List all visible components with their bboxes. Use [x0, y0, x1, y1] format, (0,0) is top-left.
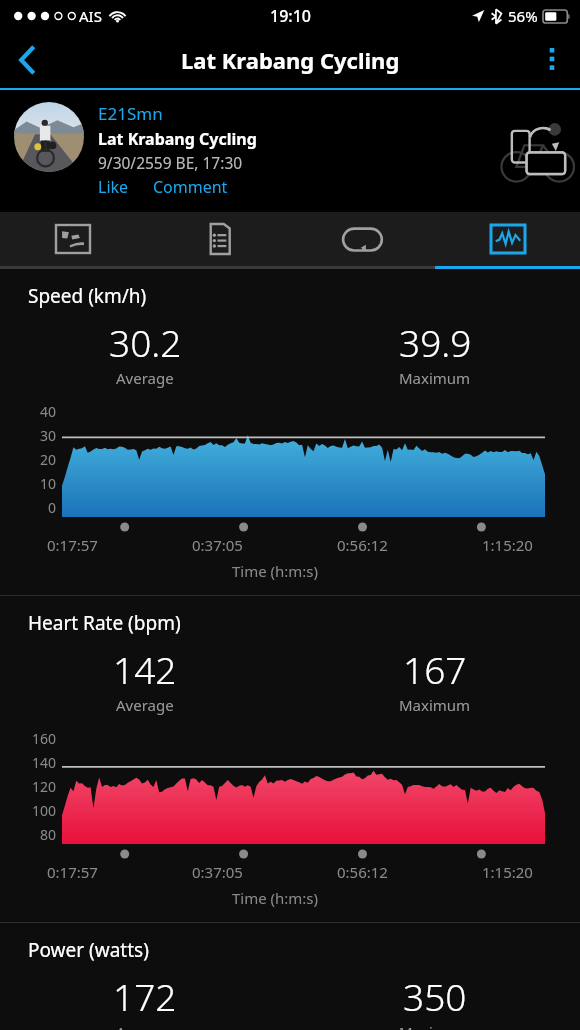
button[interactable]: Charts [435, 212, 580, 266]
button[interactable]: E21Smn [14, 102, 580, 212]
staticText: 142 [113, 644, 177, 694]
other: Rotate device [500, 115, 574, 187]
staticText: Power (watts) [28, 937, 149, 963]
button[interactable]: More options [524, 32, 580, 88]
staticText: 1:15:20 [482, 535, 533, 555]
staticText: Average [116, 695, 174, 715]
staticText: Maximum [399, 695, 471, 715]
staticText: 40 [39, 402, 56, 421]
staticText: 39.9 [399, 317, 472, 367]
staticText: 1:15:20 [482, 862, 533, 882]
staticText: 20 [39, 450, 56, 469]
staticText: 167 [403, 644, 467, 694]
staticText: 19:10 [270, 5, 311, 27]
button[interactable]: Back [0, 32, 56, 88]
staticText: 0:17:57 [47, 862, 98, 882]
staticText: 140 [31, 753, 56, 772]
staticText: Time (h:m:s) [0, 561, 550, 581]
staticText: Lat Krabang Cycling [181, 45, 400, 75]
staticText: 100 [31, 801, 56, 820]
staticText: 30.2 [109, 317, 182, 367]
staticText: 172 [113, 971, 177, 1021]
staticText: Speed (km/h) [28, 283, 147, 309]
staticText: Maximum [399, 1022, 471, 1030]
staticText: Heart Rate (bpm) [28, 610, 181, 636]
staticText: 0:17:57 [47, 535, 98, 555]
staticText: Lat Krabang Cycling [98, 128, 257, 150]
staticText: 350 [403, 971, 467, 1021]
staticText: 0:56:12 [337, 535, 388, 555]
staticText: 0 [47, 498, 56, 517]
button[interactable]: Map [0, 212, 145, 266]
staticText: 0:37:05 [192, 535, 243, 555]
staticText: 120 [31, 777, 56, 796]
button[interactable]: Laps [290, 212, 435, 266]
button[interactable]: Comment [153, 176, 228, 198]
button[interactable]: Details [145, 212, 290, 266]
staticText: 80 [39, 825, 56, 844]
staticText: 9/30/2559 BE, 17:30 [98, 152, 243, 173]
staticText: 0:37:05 [192, 862, 243, 882]
staticText: 0:56:12 [337, 862, 388, 882]
staticText: Maximum [399, 368, 471, 388]
staticText: 160 [31, 729, 56, 748]
staticText: Like [98, 176, 129, 198]
button[interactable]: Like [98, 176, 129, 198]
staticText: 56% [508, 6, 538, 26]
staticText: Comment [153, 176, 228, 198]
staticText: Time (h:m:s) [0, 888, 550, 908]
staticText: 10 [39, 474, 56, 493]
staticText: E21Smn [98, 102, 163, 125]
staticText: Average [116, 368, 174, 388]
staticText: AIS [79, 6, 102, 26]
staticText: 30 [39, 426, 56, 445]
staticText: Average [116, 1022, 174, 1030]
